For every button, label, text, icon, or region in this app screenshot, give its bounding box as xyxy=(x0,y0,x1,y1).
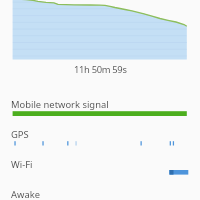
staticText: Awake xyxy=(11,188,40,200)
button[interactable]: Awake xyxy=(0,181,200,200)
button[interactable]: Wi-Fi xyxy=(0,151,200,181)
button[interactable]: Mobile network signal xyxy=(0,91,200,121)
staticText: Mobile network signal xyxy=(11,98,109,111)
staticText: GPS xyxy=(11,128,29,141)
staticText: 11h 50m 59s xyxy=(74,63,127,76)
button[interactable]: Battery level history chart xyxy=(0,0,200,62)
staticText: Wi-Fi xyxy=(11,158,33,171)
button[interactable]: 11h 50m 59s xyxy=(74,63,127,76)
button[interactable]: GPS xyxy=(0,121,200,151)
